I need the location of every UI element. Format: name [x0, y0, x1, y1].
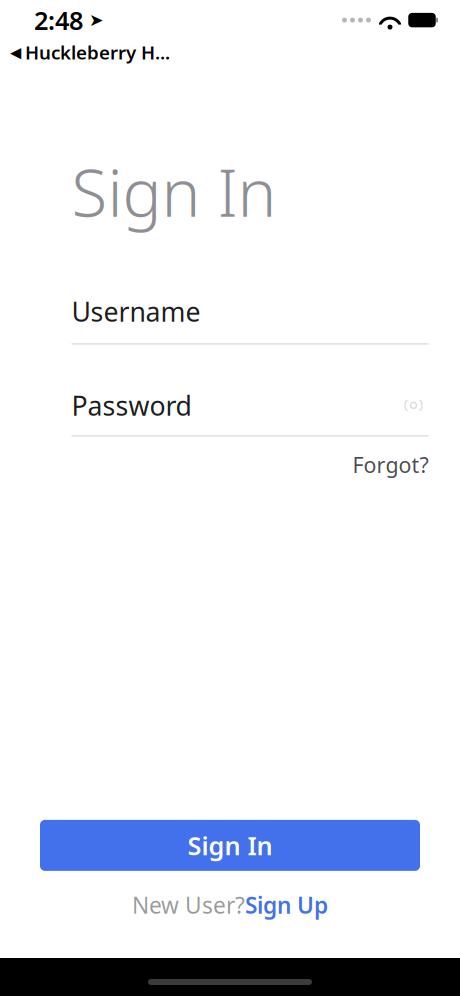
- button[interactable]: Sign In: [40, 820, 420, 871]
- button[interactable]: New User?: [132, 890, 328, 920]
- staticText: Username: [71, 294, 200, 329]
- staticText: ◀: [10, 44, 21, 61]
- button[interactable]: Forgot?: [352, 451, 428, 479]
- staticText: Huckleberry H...: [25, 40, 170, 65]
- staticText: New User?: [132, 890, 245, 920]
- staticText: Forgot?: [352, 451, 428, 479]
- button[interactable]: Show password: [398, 393, 428, 417]
- staticText: Sign In: [71, 148, 276, 235]
- staticText: Sign Up: [245, 890, 328, 920]
- staticText: Sign In: [187, 829, 272, 862]
- staticText: ➤: [83, 10, 104, 30]
- staticText: 2:48: [34, 3, 83, 37]
- staticText: Password: [71, 388, 191, 423]
- button[interactable]: ◀: [10, 40, 170, 65]
